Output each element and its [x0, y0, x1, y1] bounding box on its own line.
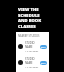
staticText: STUDIO NAME: [25, 41, 40, 49]
button[interactable]: JOIN: [40, 45, 47, 49]
staticText: VIEW THE SCHEDULE: [18, 7, 47, 18]
staticText: JOIN: [41, 62, 46, 65]
staticText: NEARBY STUDIOS: [18, 34, 40, 38]
button[interactable]: STUDIO NAME: [18, 57, 47, 68]
staticText: 1.2 mi away: [25, 49, 39, 52]
staticText: JOIN: [41, 46, 46, 49]
button[interactable]: JOIN: [40, 61, 47, 65]
staticText: AND BOOK CLASSES: [18, 18, 47, 29]
staticText: STUDIO NAME: [25, 57, 40, 65]
staticText: 1.2 mi away: [25, 65, 39, 68]
button[interactable]: STUDIO NAME: [18, 41, 47, 52]
